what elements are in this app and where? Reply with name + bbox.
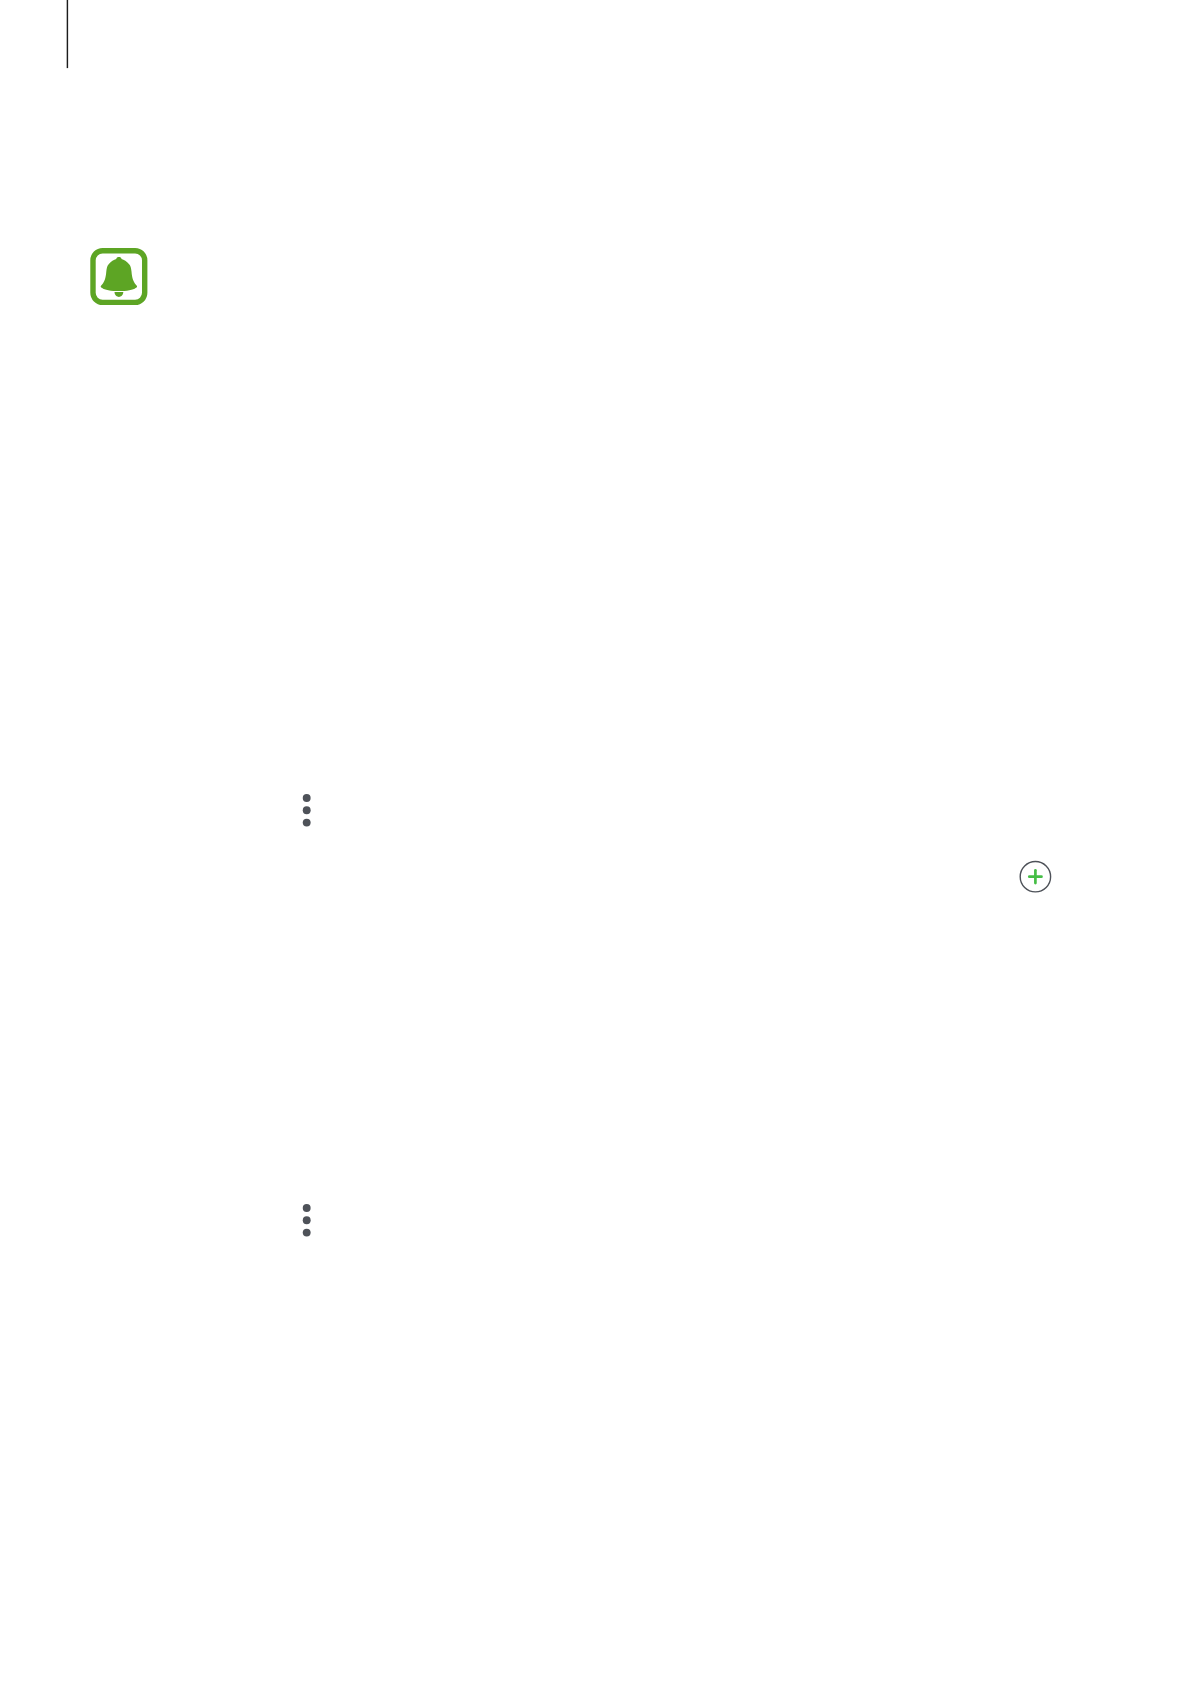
button[interactable]: Notifications bbox=[90, 247, 148, 305]
button[interactable]: Add bbox=[1019, 860, 1052, 893]
button[interactable]: More options bbox=[291, 790, 323, 832]
button[interactable]: More options bbox=[291, 1200, 323, 1242]
